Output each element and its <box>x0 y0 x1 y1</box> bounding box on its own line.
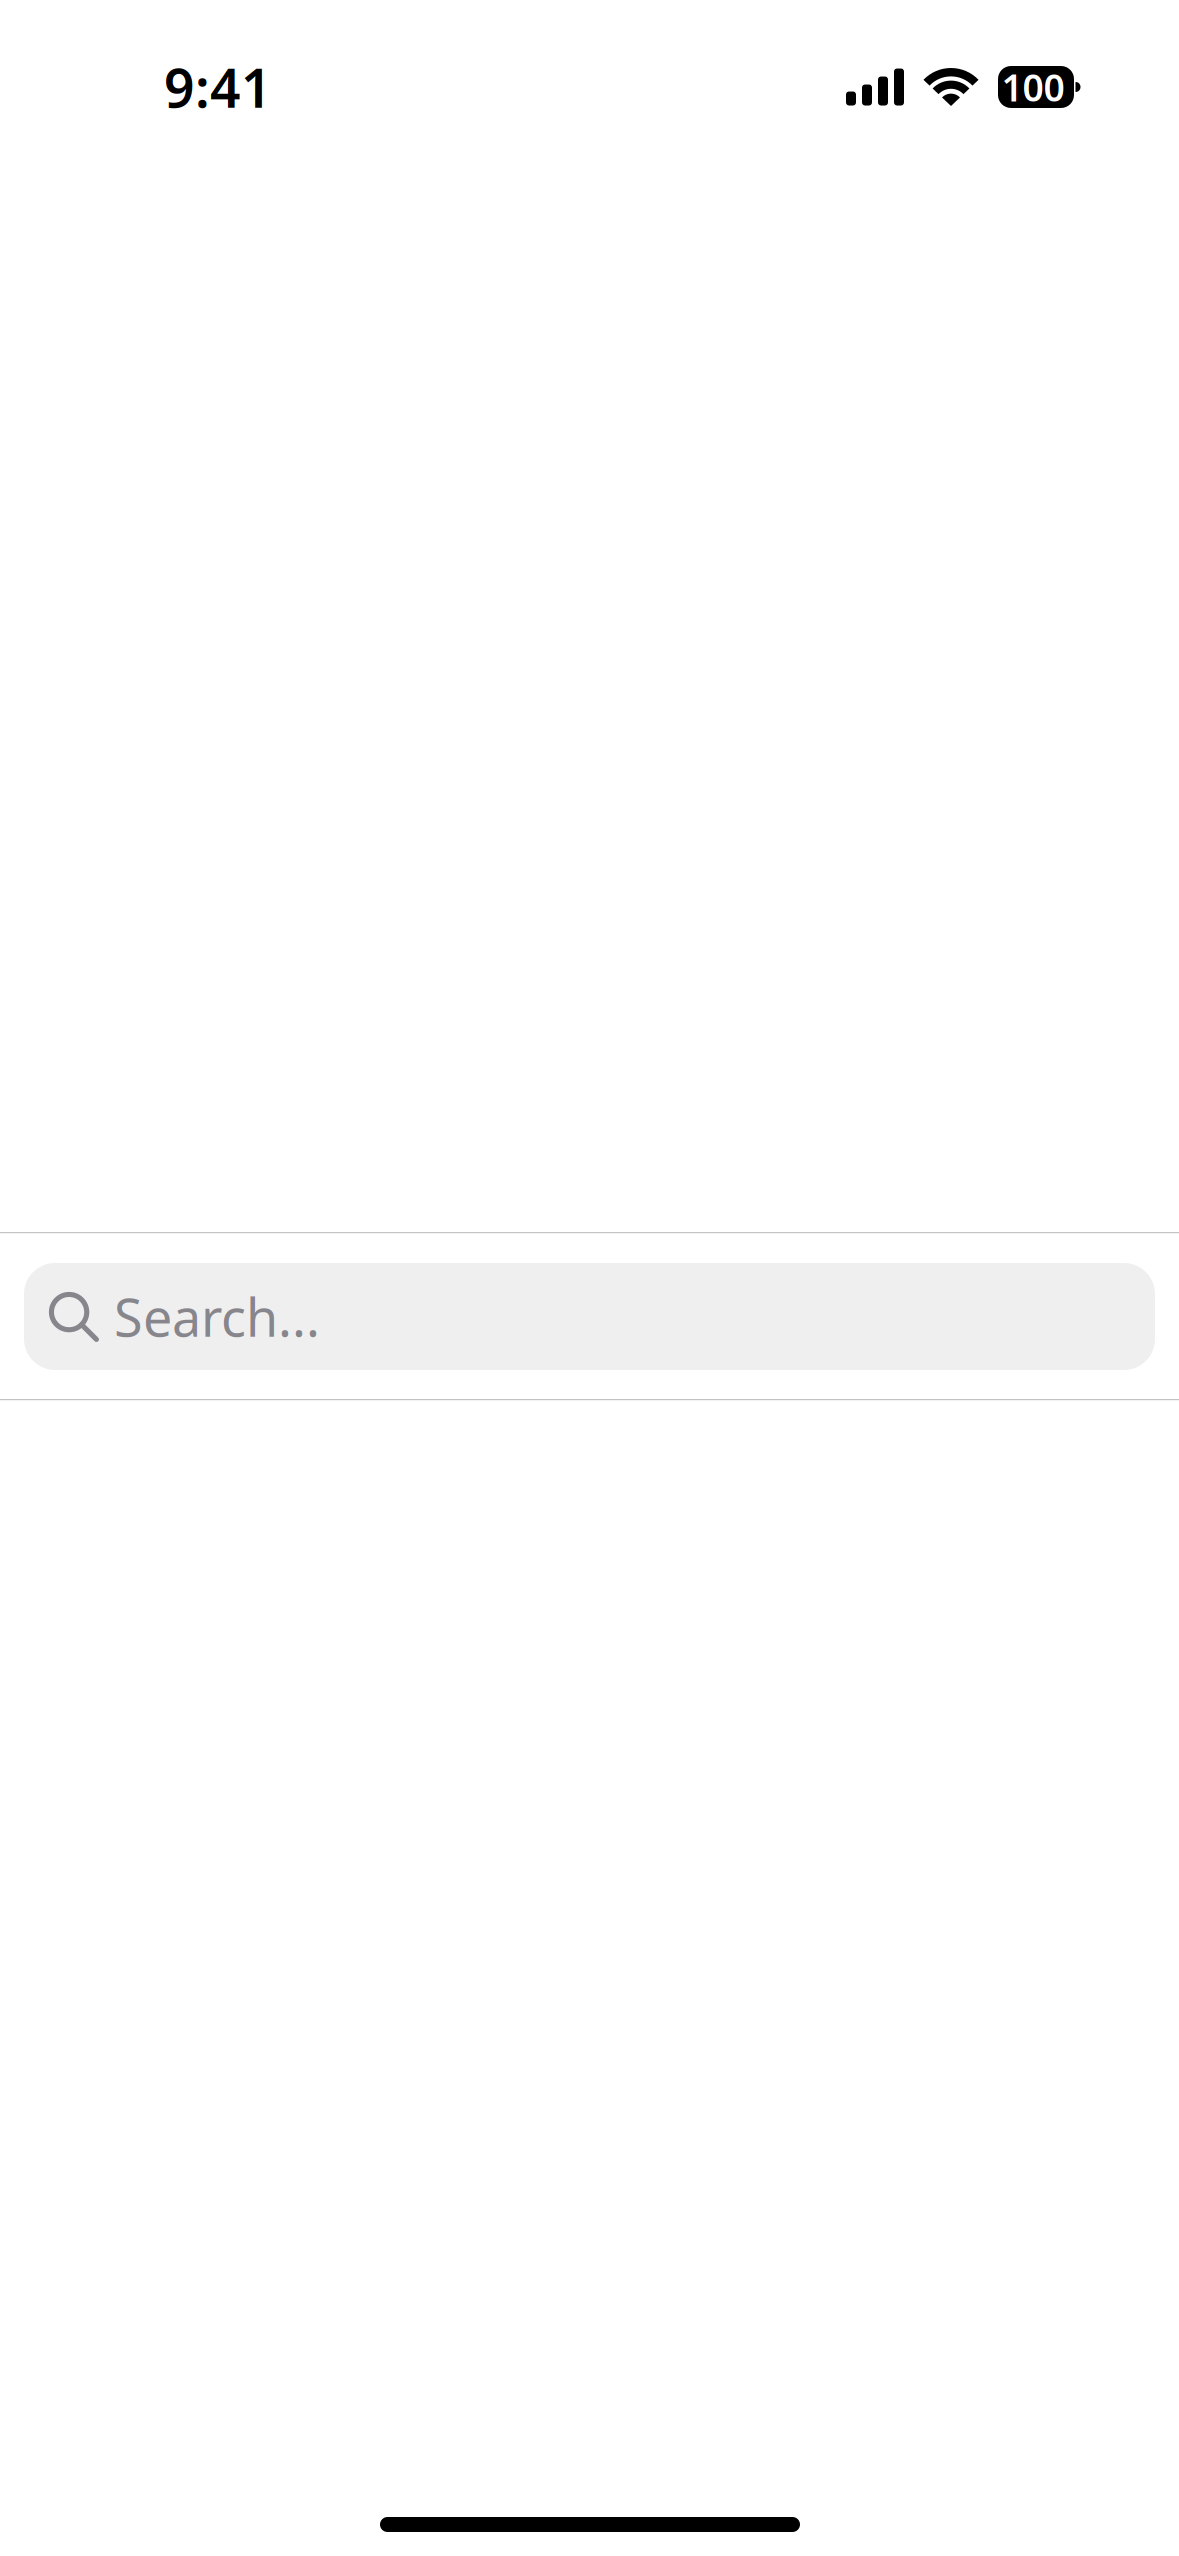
staticText: 100 <box>1001 62 1064 112</box>
staticText: Search... <box>114 1282 320 1351</box>
staticText: 9:41 <box>164 52 272 122</box>
button[interactable]: Search <box>24 1263 1155 1370</box>
